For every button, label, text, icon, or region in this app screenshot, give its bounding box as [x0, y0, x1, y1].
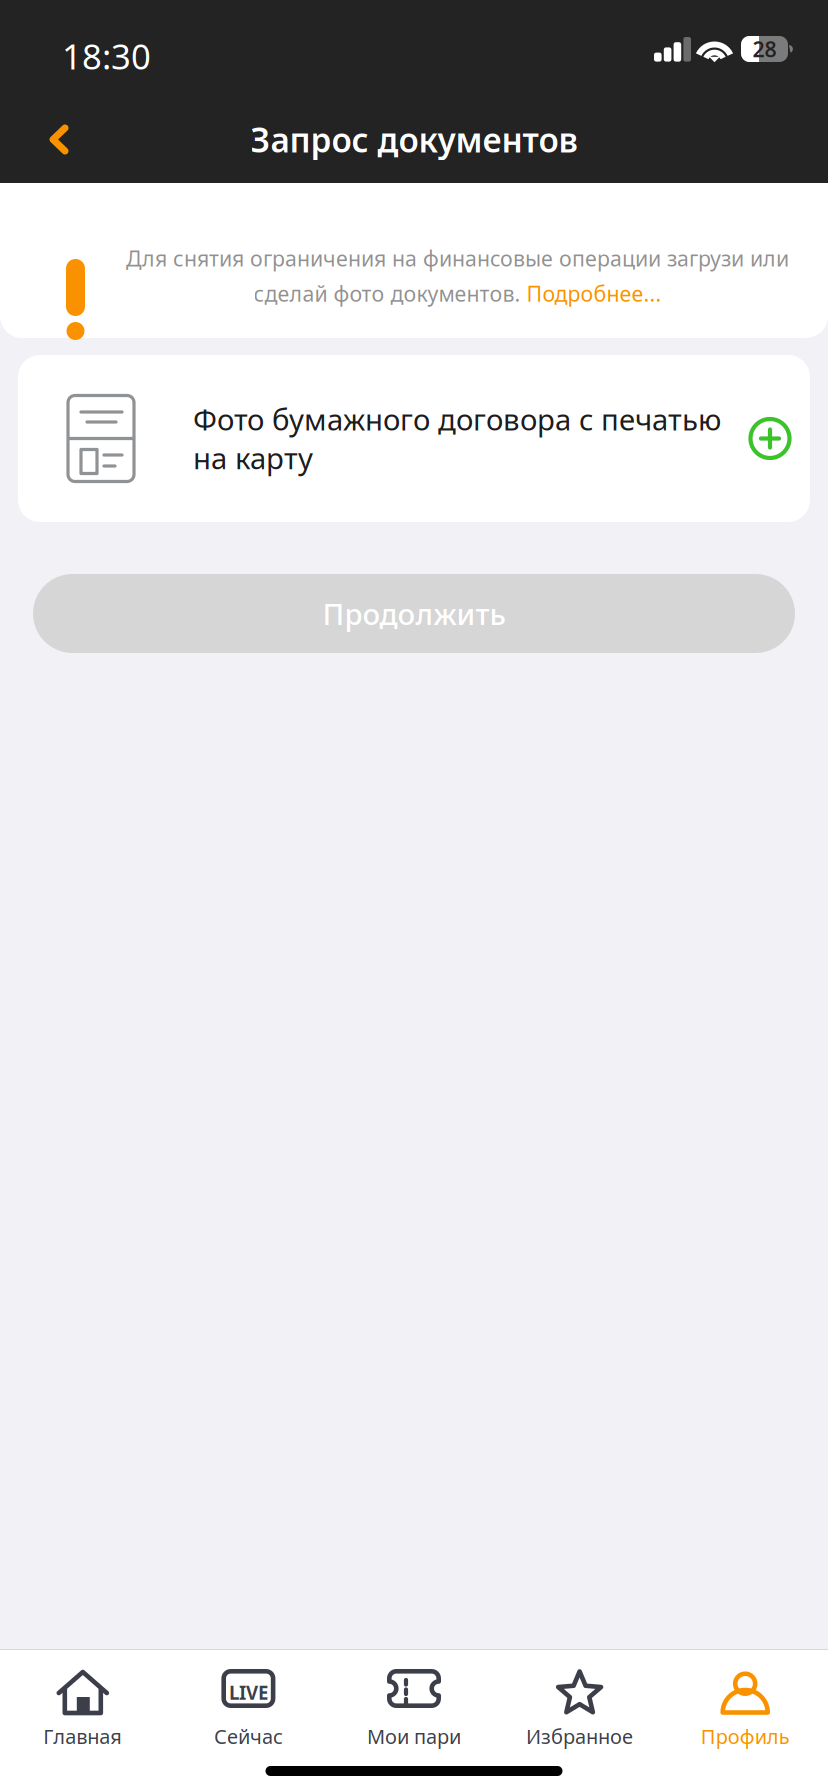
button[interactable]: Назад — [0, 96, 95, 183]
staticText: LIVE — [229, 1680, 268, 1705]
staticText: Мои пари — [367, 1723, 461, 1750]
button[interactable]: Продолжить — [33, 574, 795, 653]
staticText: сделай фото документов. — [253, 279, 526, 308]
button[interactable]: Мои пари — [331, 1669, 497, 1750]
button[interactable]: Фото бумажного договора с печатью на кар… — [18, 355, 810, 522]
staticText: 28 — [752, 35, 776, 63]
staticText: Профиль — [701, 1723, 790, 1750]
staticText: Запрос документов — [250, 117, 577, 162]
staticText: 18:30 — [62, 33, 151, 79]
staticText: Избранное — [526, 1723, 633, 1750]
button[interactable]: LIVE — [166, 1669, 331, 1750]
button[interactable]: Главная — [0, 1669, 166, 1750]
staticText: Подробнее... — [526, 279, 661, 308]
button[interactable]: Избранное — [497, 1669, 662, 1750]
staticText: Главная — [43, 1723, 122, 1750]
staticText: Продолжить — [322, 594, 505, 633]
staticText: Фото бумажного договора с печатью на кар… — [193, 399, 721, 477]
staticText: Для снятия ограничения на финансовые опе… — [126, 244, 789, 272]
staticText: Сейчас — [214, 1723, 283, 1750]
button[interactable]: Профиль — [662, 1669, 828, 1750]
